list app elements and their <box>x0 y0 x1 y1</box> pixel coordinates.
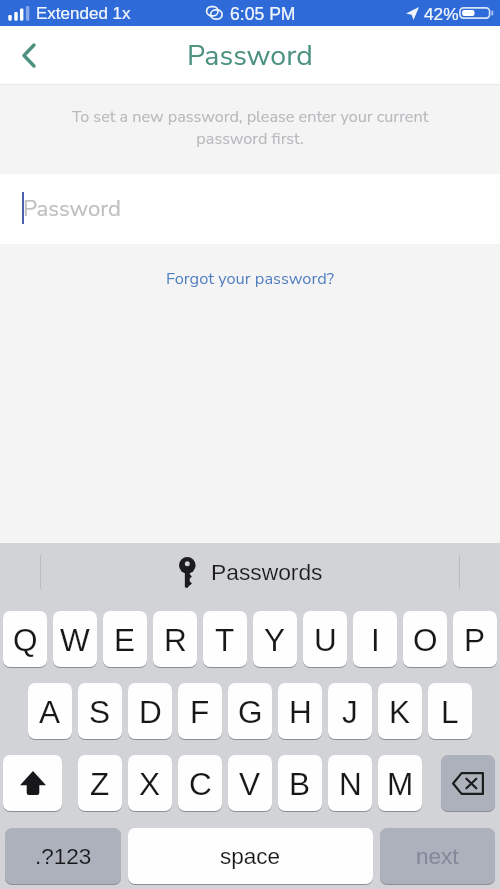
staticText: E <box>114 622 136 657</box>
button[interactable]: V <box>228 755 272 811</box>
staticText: F <box>190 694 210 729</box>
button[interactable]: next <box>380 828 495 884</box>
staticText: N <box>339 766 362 801</box>
button[interactable]: Z <box>78 755 122 811</box>
button[interactable]: T <box>203 611 247 667</box>
button[interactable]: F <box>178 683 222 739</box>
button[interactable]: C <box>178 755 222 811</box>
staticText: A <box>39 694 61 729</box>
button[interactable]: B <box>278 755 322 811</box>
staticText: space <box>220 844 281 869</box>
button[interactable]: space <box>128 828 373 884</box>
staticText: I <box>371 622 380 657</box>
staticText: H <box>289 694 312 729</box>
button[interactable]: Password <box>0 174 500 244</box>
staticText: W <box>60 622 90 657</box>
staticText: B <box>289 766 311 801</box>
staticText: .?123 <box>35 844 92 869</box>
staticText: K <box>389 694 411 729</box>
staticText: S <box>89 694 111 729</box>
staticText: 42% <box>424 4 459 23</box>
button[interactable]: Back <box>0 26 58 85</box>
staticText: D <box>139 694 162 729</box>
button[interactable]: S <box>78 683 122 739</box>
staticText: Extended 1x <box>36 4 131 23</box>
button[interactable]: E <box>103 611 147 667</box>
staticText: J <box>342 694 358 729</box>
button[interactable]: G <box>228 683 272 739</box>
staticText: X <box>139 766 161 801</box>
button[interactable]: Backspace <box>441 755 495 811</box>
button[interactable]: L <box>428 683 472 739</box>
staticText: C <box>189 766 212 801</box>
staticText: Password <box>187 36 313 75</box>
button[interactable]: Shift <box>3 755 62 811</box>
button[interactable]: .?123 <box>5 828 121 884</box>
button[interactable]: U <box>303 611 347 667</box>
staticText: To set a new password, please enter your… <box>66 106 434 149</box>
staticText: T <box>215 622 235 657</box>
staticText: L <box>441 694 459 729</box>
staticText: Y <box>264 622 286 657</box>
staticText: U <box>314 622 337 657</box>
staticText: next <box>416 844 459 869</box>
button[interactable]: A <box>28 683 72 739</box>
staticText: 6:05 PM <box>230 4 296 24</box>
button[interactable]: M <box>378 755 422 811</box>
button[interactable]: X <box>128 755 172 811</box>
staticText: R <box>164 622 187 657</box>
button[interactable]: W <box>53 611 97 667</box>
staticText: V <box>239 766 261 801</box>
button[interactable]: N <box>328 755 372 811</box>
staticText: Password <box>23 194 121 224</box>
button[interactable]: Y <box>253 611 297 667</box>
staticText: Q <box>13 622 38 657</box>
button[interactable]: H <box>278 683 322 739</box>
staticText: Z <box>90 766 110 801</box>
staticText: G <box>238 694 263 729</box>
button[interactable]: Q <box>3 611 47 667</box>
button[interactable]: Forgot your password? <box>166 267 335 289</box>
staticText: Passwords <box>211 559 323 584</box>
button[interactable]: R <box>153 611 197 667</box>
button[interactable]: Passwords <box>179 557 323 588</box>
button[interactable]: J <box>328 683 372 739</box>
button[interactable]: P <box>453 611 497 667</box>
button[interactable]: I <box>353 611 397 667</box>
button[interactable]: D <box>128 683 172 739</box>
staticText: M <box>387 766 414 801</box>
staticText: O <box>413 622 438 657</box>
button[interactable]: K <box>378 683 422 739</box>
button[interactable]: O <box>403 611 447 667</box>
staticText: P <box>464 622 486 657</box>
